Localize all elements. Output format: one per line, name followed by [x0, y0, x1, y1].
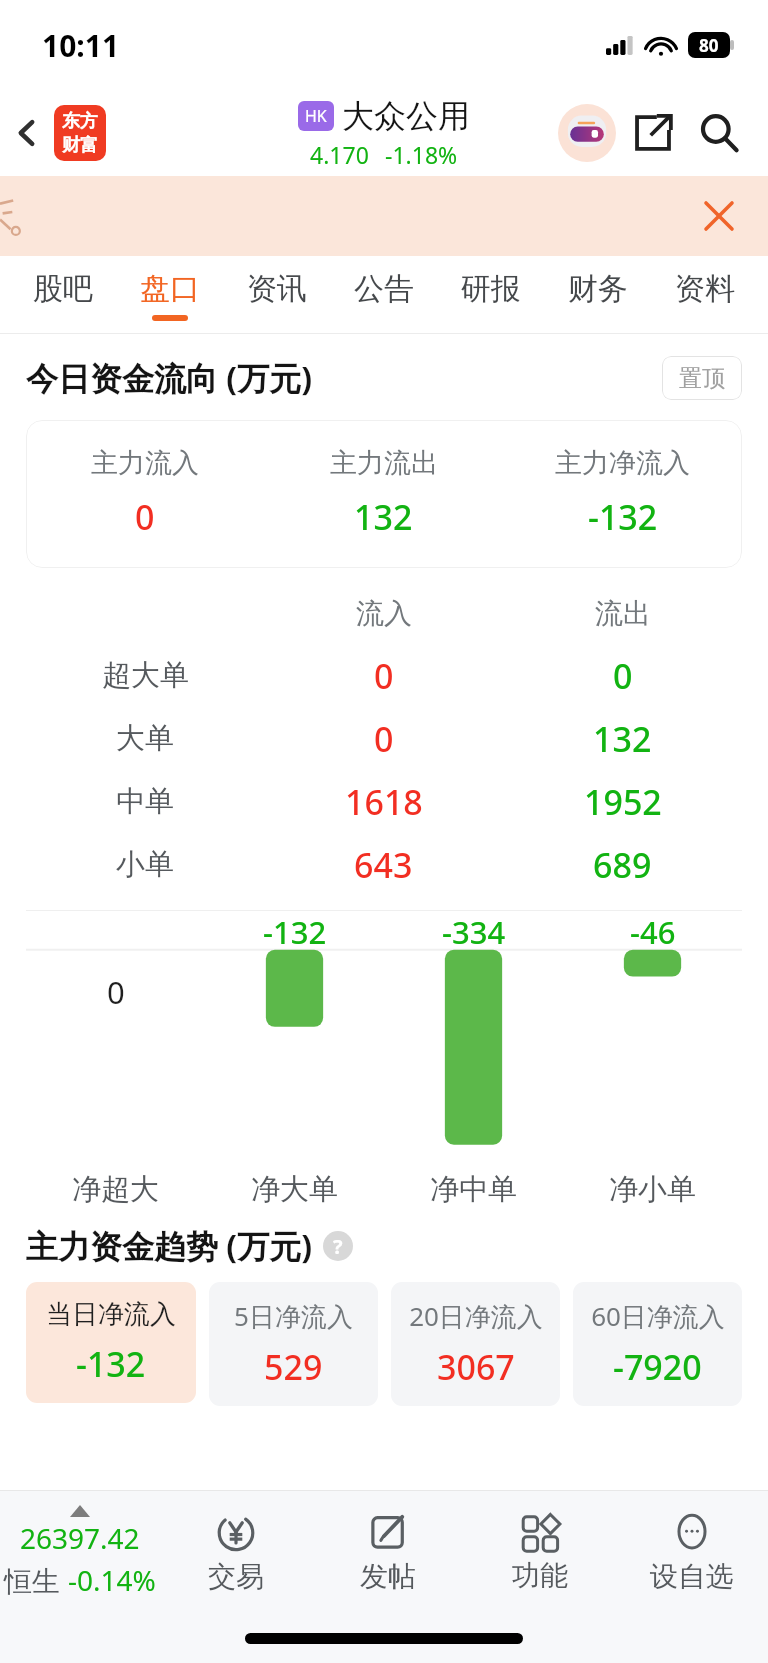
staticText: 1952	[584, 779, 662, 825]
staticText: 大众公用	[342, 96, 470, 136]
button[interactable]: Search	[686, 100, 752, 166]
staticText: 689	[593, 842, 652, 888]
staticText: 1618	[345, 779, 423, 825]
staticText: 净大单	[251, 1171, 338, 1208]
staticText: -132	[588, 494, 658, 540]
staticText: 盘口	[140, 270, 200, 308]
staticText: 公告	[354, 270, 414, 308]
staticText: -334	[442, 911, 506, 953]
staticText: 置顶	[679, 364, 725, 393]
button[interactable]: 设自选	[616, 1491, 768, 1613]
button[interactable]: 60日净流入	[573, 1282, 742, 1406]
button[interactable]: 主力流入	[26, 420, 742, 568]
staticText: 资料	[675, 270, 735, 308]
staticText: 132	[593, 716, 652, 762]
staticText: 主力流入	[91, 446, 199, 480]
staticText: -7920	[613, 1344, 702, 1390]
button[interactable]: 研报	[437, 256, 544, 334]
staticText: 80	[699, 34, 719, 57]
staticText: 26397.42	[20, 1519, 140, 1557]
staticText: 超大单	[102, 657, 189, 694]
staticText: 设自选	[650, 1559, 734, 1594]
button[interactable]: 功能	[464, 1491, 616, 1613]
staticText: -132	[76, 1341, 146, 1387]
staticText: 20日净流入	[409, 1298, 543, 1334]
staticText: 0	[374, 716, 394, 762]
staticText: 5日净流入	[234, 1298, 353, 1334]
button[interactable]: 股吧	[10, 256, 116, 334]
button[interactable]: Back	[0, 90, 54, 176]
button[interactable]: 当日净流入	[26, 1282, 196, 1403]
button[interactable]: Close banner	[692, 189, 746, 243]
staticText: 0	[374, 653, 394, 699]
staticText: 主力净流入	[555, 446, 690, 480]
button[interactable]: 公告	[330, 256, 437, 334]
button[interactable]: Help	[323, 1231, 353, 1261]
staticText: -46	[630, 911, 676, 953]
button[interactable]: 发帖	[312, 1491, 464, 1613]
button[interactable]: 小单	[26, 833, 742, 896]
staticText: 132	[354, 494, 413, 540]
staticText: 主力资金趋势 (万元)	[26, 1224, 313, 1268]
staticText: -0.14%	[68, 1561, 156, 1599]
staticText: 功能	[512, 1558, 568, 1593]
staticText: 东方	[62, 110, 98, 133]
staticText: 0	[135, 494, 155, 540]
staticText: 恒生	[4, 1561, 68, 1599]
staticText: 大单	[116, 720, 174, 757]
staticText: 529	[264, 1344, 323, 1390]
staticText: 资讯	[247, 270, 307, 308]
staticText: 流入	[356, 596, 412, 631]
button[interactable]: 5日净流入	[209, 1282, 378, 1406]
staticText: 净小单	[609, 1171, 696, 1208]
button[interactable]: 资料	[651, 256, 758, 334]
staticText: 发帖	[360, 1559, 416, 1594]
button[interactable]: 盘口	[116, 256, 223, 334]
staticText: 净中单	[430, 1171, 517, 1208]
staticText: 小单	[116, 846, 174, 883]
button[interactable]: 26397.42	[0, 1491, 160, 1613]
staticText: 4.170	[310, 139, 369, 170]
button[interactable]: 大单	[26, 707, 742, 770]
button[interactable]: 超大单	[26, 644, 742, 707]
button[interactable]: 东方财富	[54, 105, 106, 161]
staticText: 流出	[595, 596, 651, 631]
staticText: 交易	[208, 1559, 264, 1594]
staticText: 研报	[461, 270, 521, 308]
staticText: 当日净流入	[46, 1298, 176, 1331]
staticText: 今日资金流向 (万元)	[26, 356, 313, 400]
button[interactable]: 置顶	[662, 356, 742, 400]
staticText: 10:11	[42, 25, 120, 66]
staticText: 60日净流入	[591, 1298, 725, 1334]
button[interactable]: 资讯	[223, 256, 330, 334]
button[interactable]: AI assistant	[554, 100, 620, 166]
button[interactable]: 财务	[544, 256, 651, 334]
staticText: 净超大	[72, 1171, 159, 1208]
staticText: 股吧	[33, 270, 93, 308]
staticText: HK	[305, 105, 327, 127]
staticText: 中单	[116, 783, 174, 820]
staticText: 主力流出	[330, 446, 438, 480]
button[interactable]: 中单	[26, 770, 742, 833]
staticText: ?	[333, 1233, 343, 1260]
staticText: -132	[263, 911, 327, 953]
button[interactable]: Share	[620, 100, 686, 166]
staticText: 财务	[568, 270, 628, 308]
staticText: 财富	[62, 134, 98, 157]
staticText: -1.18%	[385, 139, 458, 170]
staticText: 3067	[437, 1344, 515, 1390]
staticText: 0	[613, 653, 633, 699]
staticText: 0	[107, 971, 125, 1013]
staticText: 643	[354, 842, 413, 888]
button[interactable]: 20日净流入	[391, 1282, 560, 1406]
button[interactable]: 交易	[160, 1491, 312, 1613]
